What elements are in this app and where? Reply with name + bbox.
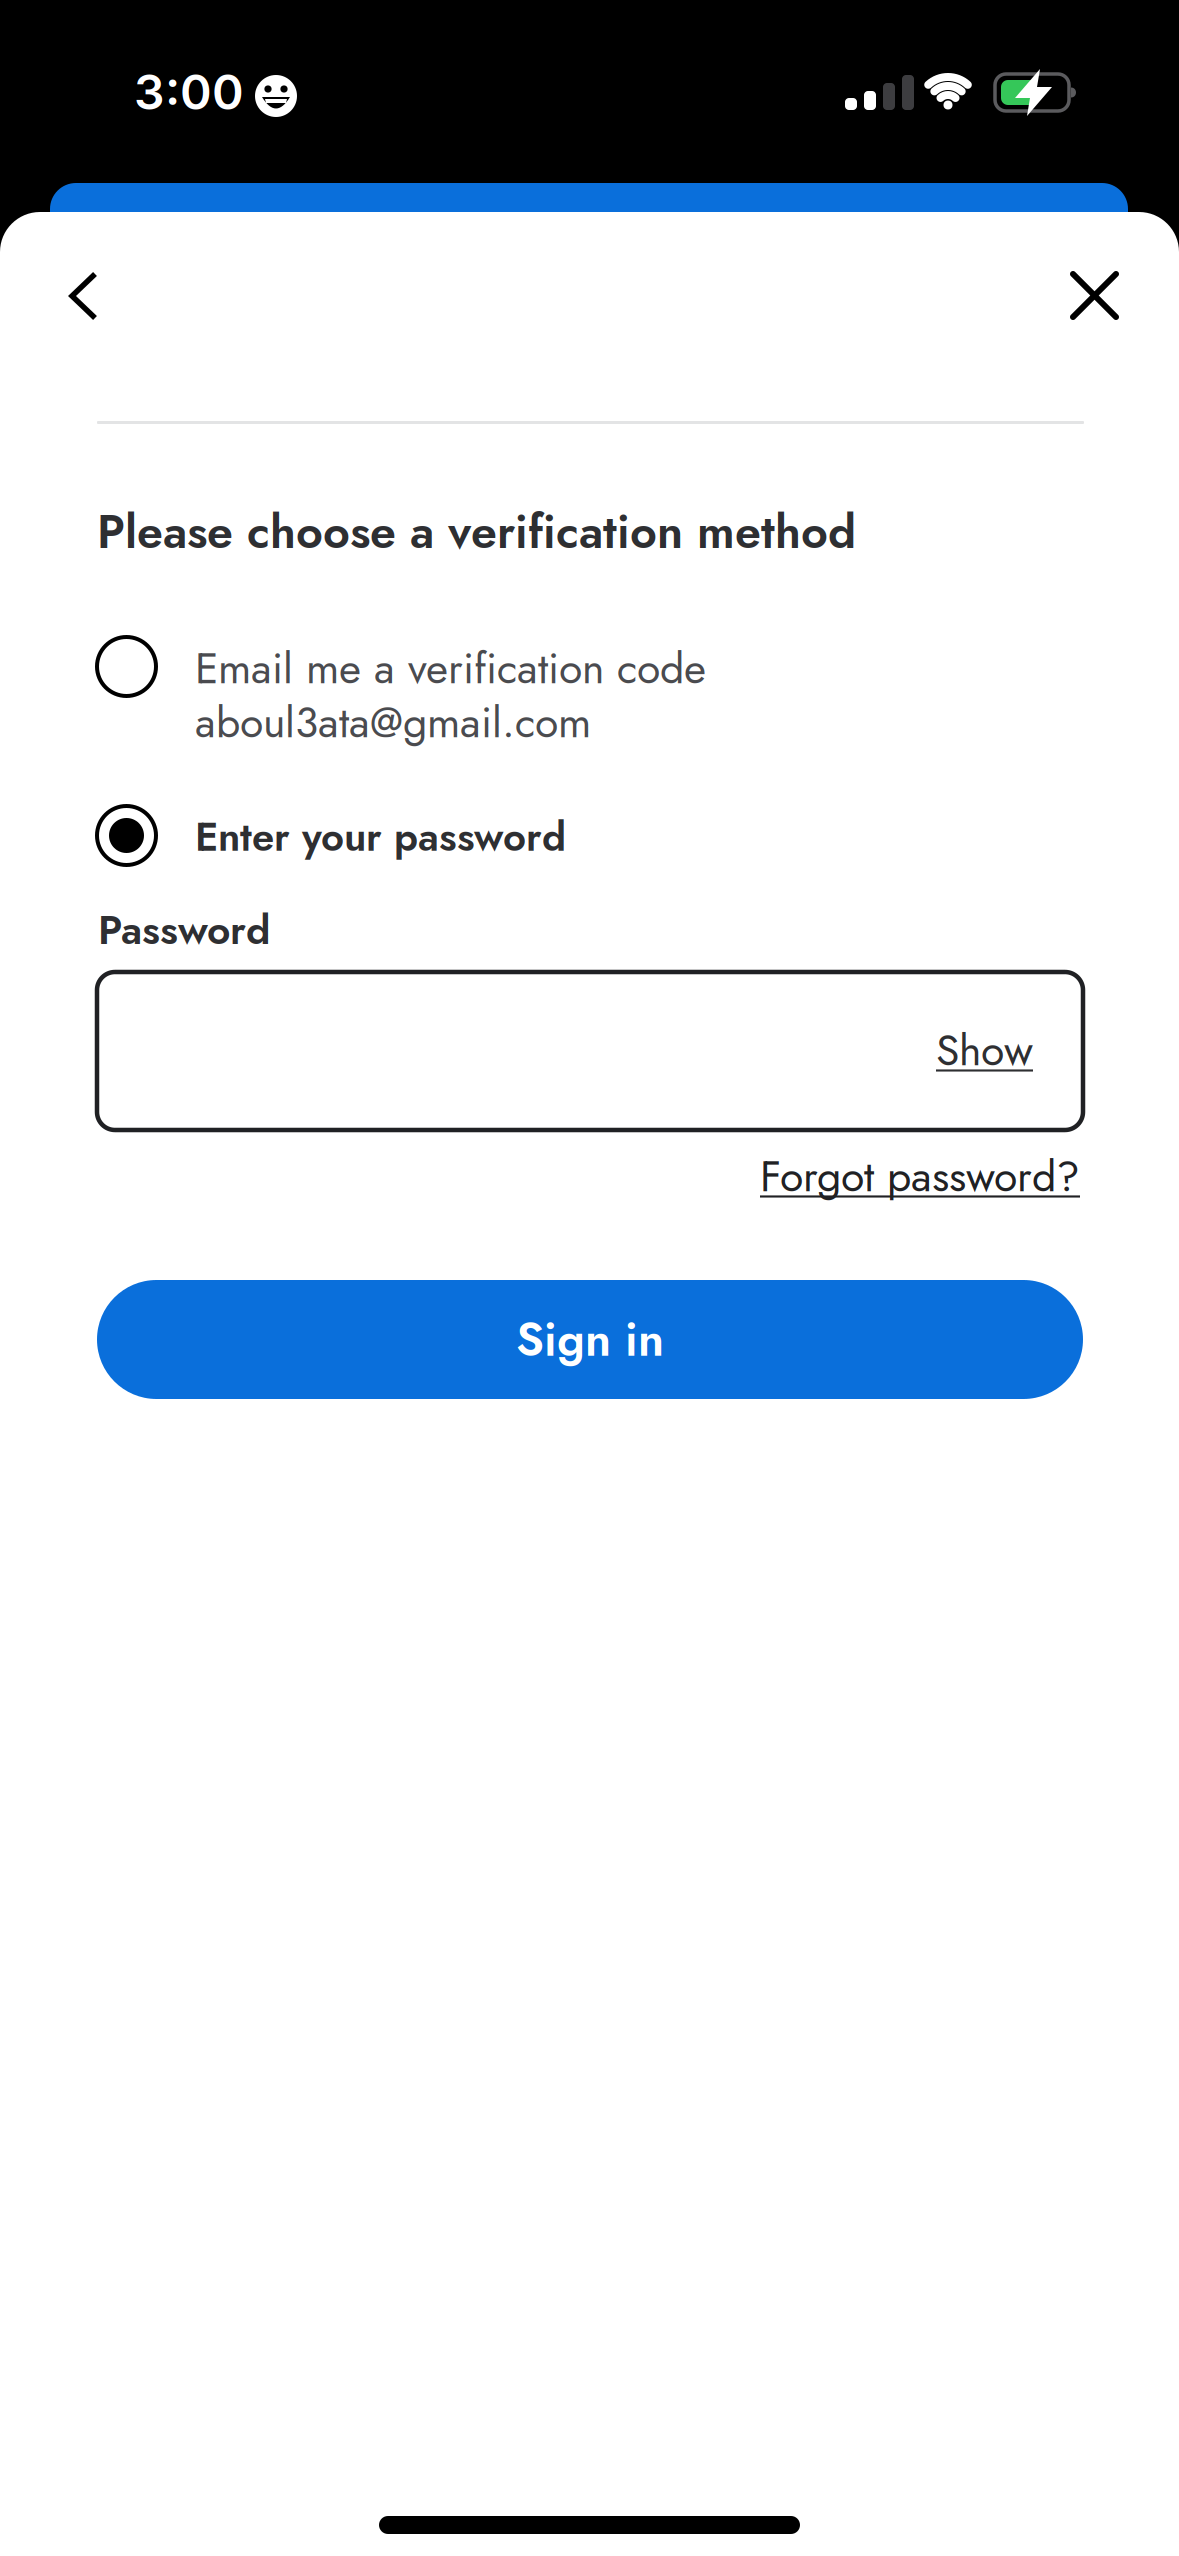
- staticText: Password: [98, 900, 270, 959]
- staticText: Show: [936, 1019, 1033, 1081]
- staticText: Enter your password: [195, 808, 566, 866]
- button[interactable]: Sign in: [97, 1280, 1083, 1399]
- button[interactable]: Show: [936, 1019, 1033, 1081]
- staticText: Sign in: [516, 1306, 664, 1373]
- button[interactable]: Enter your password: [97, 804, 817, 868]
- button[interactable]: Close: [1050, 251, 1138, 339]
- staticText: Please choose a verification method: [97, 498, 856, 565]
- button[interactable]: Email me a verification code: [97, 637, 817, 762]
- button[interactable]: Back: [40, 252, 128, 340]
- staticText: Email me a verification code: [195, 637, 706, 699]
- staticText: 3:00: [134, 63, 244, 121]
- staticText: aboul3ata@gmail.com: [195, 691, 591, 753]
- staticText: Forgot password?: [760, 1145, 1080, 1207]
- button[interactable]: Forgot password?: [760, 1145, 1080, 1207]
